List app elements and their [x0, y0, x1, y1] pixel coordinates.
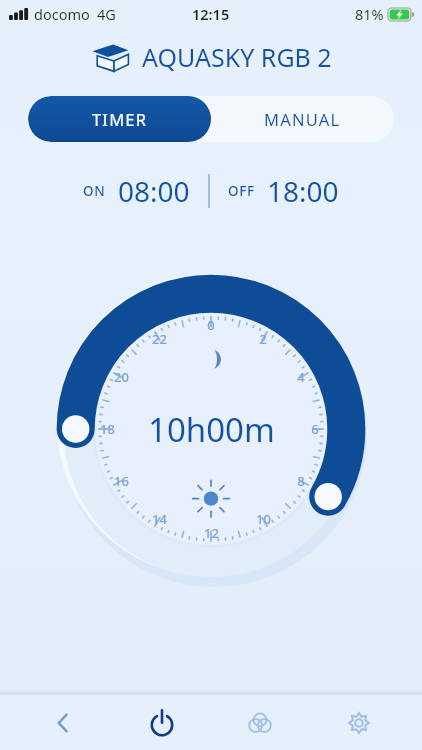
staticText: 8: [297, 472, 305, 490]
staticText: MANUAL: [264, 108, 341, 130]
staticText: 0: [207, 316, 215, 334]
staticText: 4G: [97, 4, 116, 24]
staticText: 2: [259, 330, 267, 348]
staticText: 22: [152, 330, 167, 348]
staticText: 14: [152, 510, 167, 528]
staticText: 4: [297, 368, 305, 386]
staticText: 18:00: [267, 172, 339, 210]
button[interactable]: Back: [27, 695, 99, 750]
button[interactable]: Power: [126, 695, 198, 750]
button[interactable]: OFF: [228, 172, 339, 210]
staticText: 81%: [355, 4, 384, 24]
staticText: 08:00: [118, 172, 190, 210]
staticText: 10h00m: [148, 407, 275, 452]
staticText: 10: [256, 510, 271, 528]
button[interactable]: [41, 259, 381, 599]
button[interactable]: ON: [83, 172, 190, 210]
button[interactable]: Settings: [323, 695, 395, 750]
staticText: 12:15: [192, 4, 230, 24]
button[interactable]: TIMER: [28, 96, 211, 142]
staticText: ON: [83, 182, 106, 200]
staticText: 20: [114, 368, 129, 386]
staticText: 16: [114, 472, 129, 490]
staticText: docomo: [34, 4, 90, 24]
staticText: AQUASKY RGB 2: [142, 40, 332, 74]
staticText: 6: [311, 420, 319, 438]
staticText: OFF: [228, 182, 255, 200]
button[interactable]: MANUAL: [211, 96, 394, 142]
button[interactable]: Colour mode: [224, 695, 296, 750]
staticText: TIMER: [92, 108, 148, 130]
staticText: 12: [204, 524, 219, 542]
staticText: 18: [100, 420, 115, 438]
